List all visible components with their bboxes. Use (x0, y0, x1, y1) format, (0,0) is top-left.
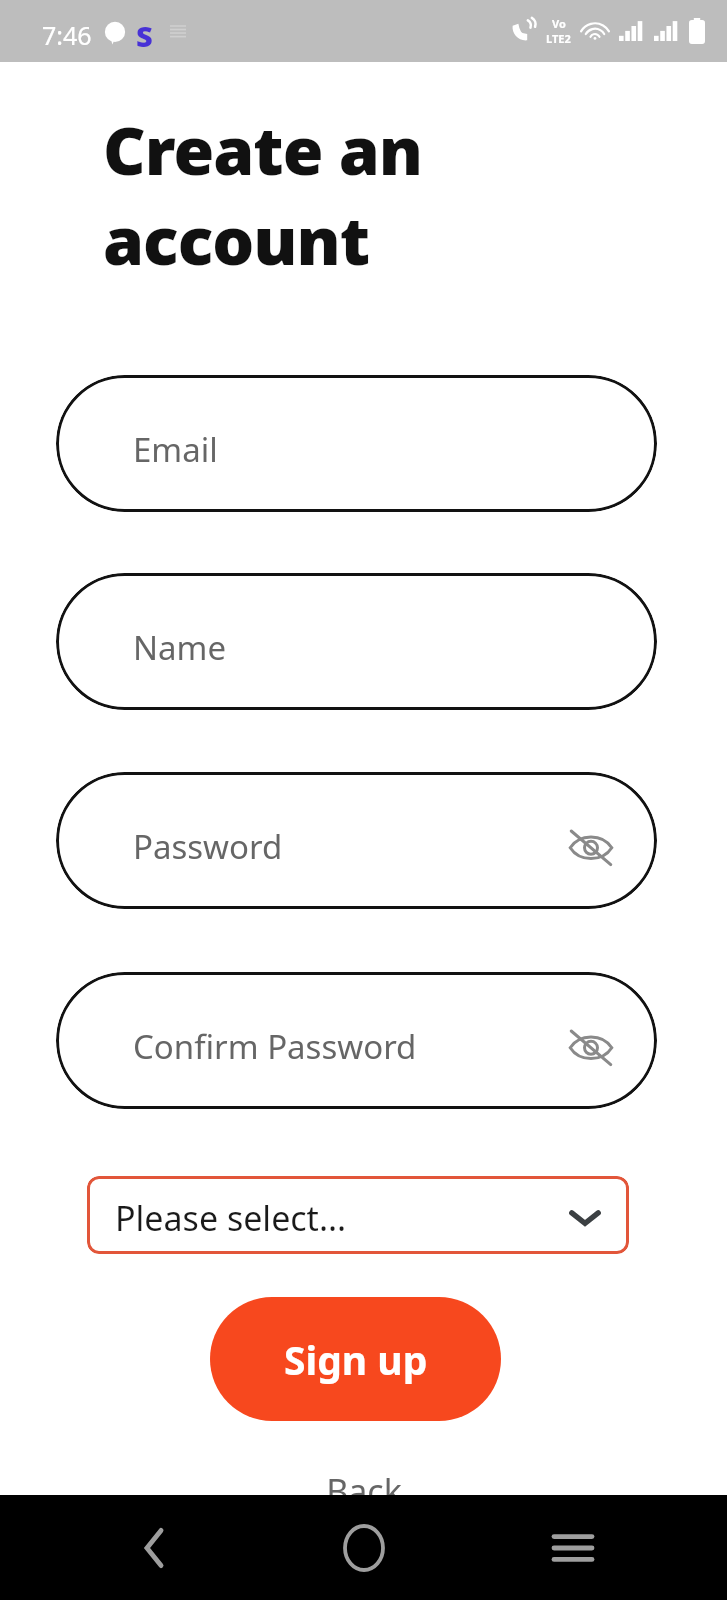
staticText: LTE2 (546, 31, 571, 46)
staticText: Sign up (284, 1333, 428, 1386)
button[interactable]: Home (328, 1512, 400, 1584)
button[interactable]: Back (118, 1512, 190, 1584)
staticText: S (136, 16, 153, 55)
staticText: Confirm Password (133, 1024, 417, 1069)
button[interactable]: Please select... (87, 1176, 629, 1254)
staticText: Create an (103, 104, 423, 194)
button[interactable]: Sign up (210, 1297, 501, 1421)
staticText: Vo (552, 16, 566, 31)
staticText: Please select... (115, 1195, 347, 1241)
staticText: Email (133, 427, 218, 472)
button[interactable]: Show password (555, 811, 627, 883)
button[interactable]: Name (56, 573, 657, 710)
button[interactable]: Back (297, 1468, 430, 1502)
button[interactable]: Confirm Password (56, 972, 657, 1109)
staticText: 7:46 (42, 18, 92, 52)
staticText: Name (133, 625, 227, 670)
other: Expand (559, 1192, 611, 1244)
button[interactable]: Recent apps (537, 1512, 609, 1584)
staticText: account (103, 194, 370, 284)
button[interactable]: Show password (555, 1011, 627, 1083)
button[interactable]: Password (56, 772, 657, 909)
staticText: Back (326, 1468, 402, 1502)
button[interactable]: Email (56, 375, 657, 512)
staticText: Password (133, 824, 283, 869)
